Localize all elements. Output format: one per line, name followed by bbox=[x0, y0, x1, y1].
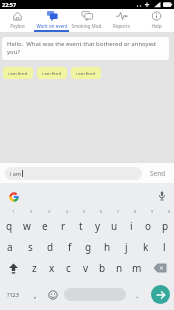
staticText: n bbox=[116, 261, 123, 275]
staticText: x bbox=[49, 261, 55, 275]
staticText: 9 bbox=[151, 209, 154, 214]
staticText: o bbox=[145, 219, 152, 233]
staticText: Psybot bbox=[10, 23, 25, 29]
button[interactable] bbox=[158, 191, 166, 202]
button[interactable]: v bbox=[77, 257, 94, 279]
button[interactable]: z bbox=[26, 257, 43, 279]
button[interactable]: i am fired bbox=[3, 67, 33, 79]
staticText: Help bbox=[151, 23, 162, 29]
staticText: . bbox=[136, 289, 139, 301]
staticText: d bbox=[47, 240, 54, 254]
staticText: Smoking Mod. bbox=[71, 23, 103, 29]
staticText: r bbox=[61, 219, 66, 233]
button[interactable]: b bbox=[94, 257, 111, 279]
staticText: y bbox=[95, 219, 101, 233]
staticText: t bbox=[79, 219, 83, 233]
staticText: i am fired bbox=[42, 70, 62, 76]
staticText: i am fired bbox=[76, 70, 96, 76]
button[interactable]: Work on event bbox=[34, 9, 69, 32]
button[interactable]: Smoking Mod. bbox=[69, 9, 104, 32]
button[interactable]: a bbox=[0, 236, 20, 258]
staticText: i am fired bbox=[8, 70, 28, 76]
button[interactable]: i am fired bbox=[37, 67, 67, 79]
button[interactable]: Help bbox=[139, 9, 174, 32]
staticText: 5 bbox=[83, 209, 86, 214]
staticText: i am bbox=[10, 170, 22, 177]
staticText: 6 bbox=[100, 209, 103, 214]
staticText: q bbox=[6, 219, 13, 233]
button[interactable]: k bbox=[136, 236, 155, 258]
staticText: i bbox=[130, 219, 133, 233]
staticText: c bbox=[66, 261, 71, 275]
staticText: z bbox=[32, 261, 37, 275]
staticText: 3 bbox=[48, 209, 51, 214]
staticText: s bbox=[28, 240, 33, 254]
staticText: u bbox=[111, 219, 118, 233]
button[interactable]: y bbox=[89, 215, 106, 236]
staticText: a bbox=[7, 240, 13, 254]
button[interactable]: j bbox=[117, 236, 136, 258]
staticText: 22:57 bbox=[2, 1, 17, 8]
button[interactable]: s bbox=[20, 236, 40, 258]
staticText: h bbox=[104, 240, 111, 254]
button[interactable]: n bbox=[111, 257, 128, 279]
button[interactable]: l bbox=[155, 236, 174, 258]
staticText: Send bbox=[150, 169, 166, 178]
staticText: 7 bbox=[117, 209, 120, 214]
button[interactable]: h bbox=[98, 236, 117, 258]
staticText: p bbox=[162, 219, 169, 233]
button[interactable]: m bbox=[128, 257, 145, 279]
button[interactable]: q bbox=[0, 215, 18, 236]
staticText: b bbox=[99, 261, 106, 275]
button[interactable] bbox=[0, 257, 26, 279]
staticText: l bbox=[163, 240, 166, 254]
staticText: 0 bbox=[168, 209, 171, 214]
staticText: 2 bbox=[30, 209, 33, 214]
button[interactable]: , bbox=[26, 279, 44, 310]
button[interactable]: d bbox=[40, 236, 60, 258]
button[interactable]: i am fired bbox=[71, 67, 101, 79]
staticText: g bbox=[85, 240, 92, 254]
button[interactable]: p bbox=[157, 215, 174, 236]
button[interactable]: . bbox=[128, 279, 146, 310]
staticText: Reports bbox=[113, 23, 130, 29]
button[interactable] bbox=[151, 285, 170, 304]
button[interactable]: c bbox=[60, 257, 77, 279]
staticText: Work on event bbox=[36, 23, 68, 29]
staticText: ?123 bbox=[7, 291, 19, 298]
button[interactable]: w bbox=[18, 215, 36, 236]
button[interactable]: ?123 bbox=[0, 279, 26, 310]
button[interactable]: Psybot bbox=[0, 9, 34, 32]
staticText: w bbox=[23, 219, 31, 233]
staticText: , bbox=[34, 289, 37, 301]
button[interactable] bbox=[62, 279, 128, 310]
button[interactable]: i bbox=[123, 215, 140, 236]
button[interactable]: Send bbox=[142, 163, 174, 183]
button[interactable]: x bbox=[43, 257, 60, 279]
staticText: j bbox=[125, 240, 128, 254]
staticText: Hello. What was the event that bothered … bbox=[7, 40, 164, 56]
button[interactable]: e bbox=[36, 215, 54, 236]
button[interactable] bbox=[145, 257, 174, 279]
button[interactable]: f bbox=[60, 236, 79, 258]
staticText: k bbox=[143, 240, 149, 254]
button[interactable]: g bbox=[79, 236, 98, 258]
staticText: v bbox=[83, 261, 89, 275]
button[interactable] bbox=[9, 192, 19, 202]
button[interactable]: r bbox=[54, 215, 72, 236]
staticText: e bbox=[42, 219, 48, 233]
staticText: m bbox=[132, 261, 142, 275]
button[interactable]: o bbox=[140, 215, 157, 236]
button[interactable] bbox=[44, 279, 62, 310]
button[interactable]: Reports bbox=[104, 9, 139, 32]
staticText: 4 bbox=[66, 209, 69, 214]
staticText: 1 bbox=[12, 209, 15, 214]
button[interactable]: t bbox=[72, 215, 89, 236]
staticText: 8 bbox=[134, 209, 137, 214]
staticText: f bbox=[68, 240, 72, 254]
button[interactable]: u bbox=[106, 215, 123, 236]
